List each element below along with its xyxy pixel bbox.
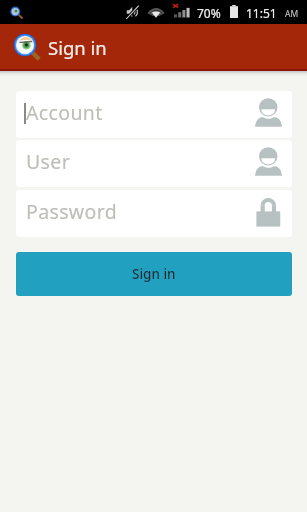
button[interactable]: Password xyxy=(16,190,292,237)
staticText: Account xyxy=(26,99,103,126)
staticText: Password xyxy=(26,198,117,225)
button[interactable]: Account xyxy=(16,91,292,138)
staticText: AM xyxy=(285,8,299,20)
staticText: 11:51 xyxy=(246,5,277,21)
staticText: User xyxy=(26,148,71,175)
button[interactable]: Sign in xyxy=(16,252,292,296)
staticText: 70% xyxy=(197,5,221,21)
staticText: Sign in xyxy=(48,35,107,60)
staticText: Sign in xyxy=(132,265,176,283)
button[interactable]: App logo xyxy=(4,25,46,67)
button[interactable]: User xyxy=(16,140,292,187)
